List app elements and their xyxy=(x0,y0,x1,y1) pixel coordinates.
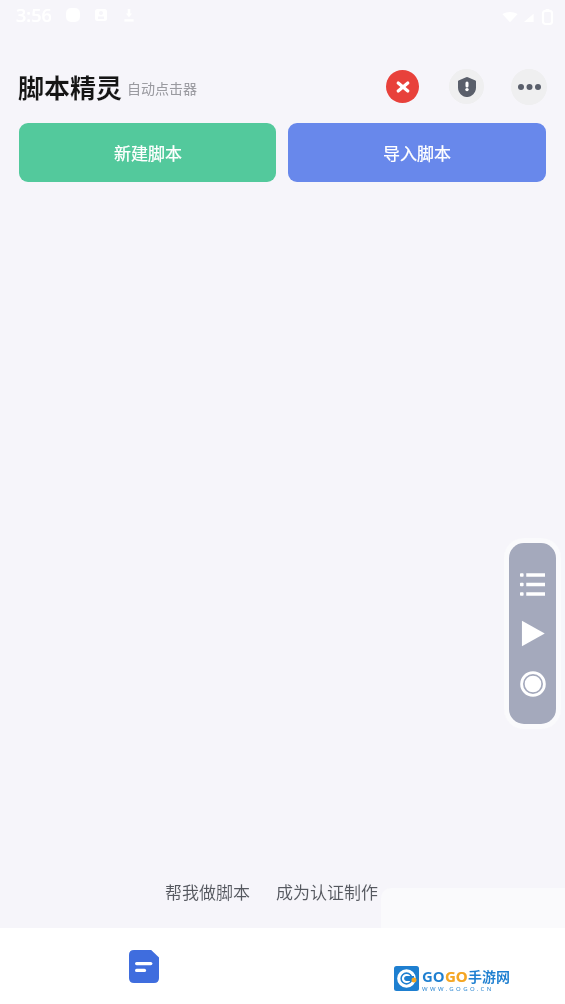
staticText: 脚本精灵 xyxy=(18,68,123,106)
staticText: 3:56 xyxy=(16,3,52,28)
staticText: 手游网 xyxy=(468,966,510,986)
button[interactable]: 新建脚本 xyxy=(19,123,276,182)
staticText: 导入脚本 xyxy=(383,140,451,165)
button[interactable]: 帮我做脚本 xyxy=(160,874,255,909)
button[interactable]: Script list xyxy=(515,568,550,600)
staticText: GO xyxy=(422,966,445,986)
staticText: GO xyxy=(445,966,468,986)
button[interactable]: Stop xyxy=(386,70,419,103)
staticText: 帮我做脚本 xyxy=(165,879,250,904)
button[interactable]: Security xyxy=(449,69,484,104)
button[interactable]: 导入脚本 xyxy=(288,123,546,182)
button[interactable]: 成为认证制作 xyxy=(271,874,383,909)
button[interactable]: Record xyxy=(515,667,550,701)
staticText: WWW.GOGO.CN xyxy=(422,985,494,993)
button[interactable]: Play xyxy=(515,615,550,651)
button[interactable]: Scripts xyxy=(128,948,160,984)
staticText: 自动点击器 xyxy=(127,78,197,98)
button[interactable]: More options xyxy=(511,69,547,105)
staticText: 成为认证制作 xyxy=(276,879,378,904)
staticText: 新建脚本 xyxy=(114,140,182,165)
